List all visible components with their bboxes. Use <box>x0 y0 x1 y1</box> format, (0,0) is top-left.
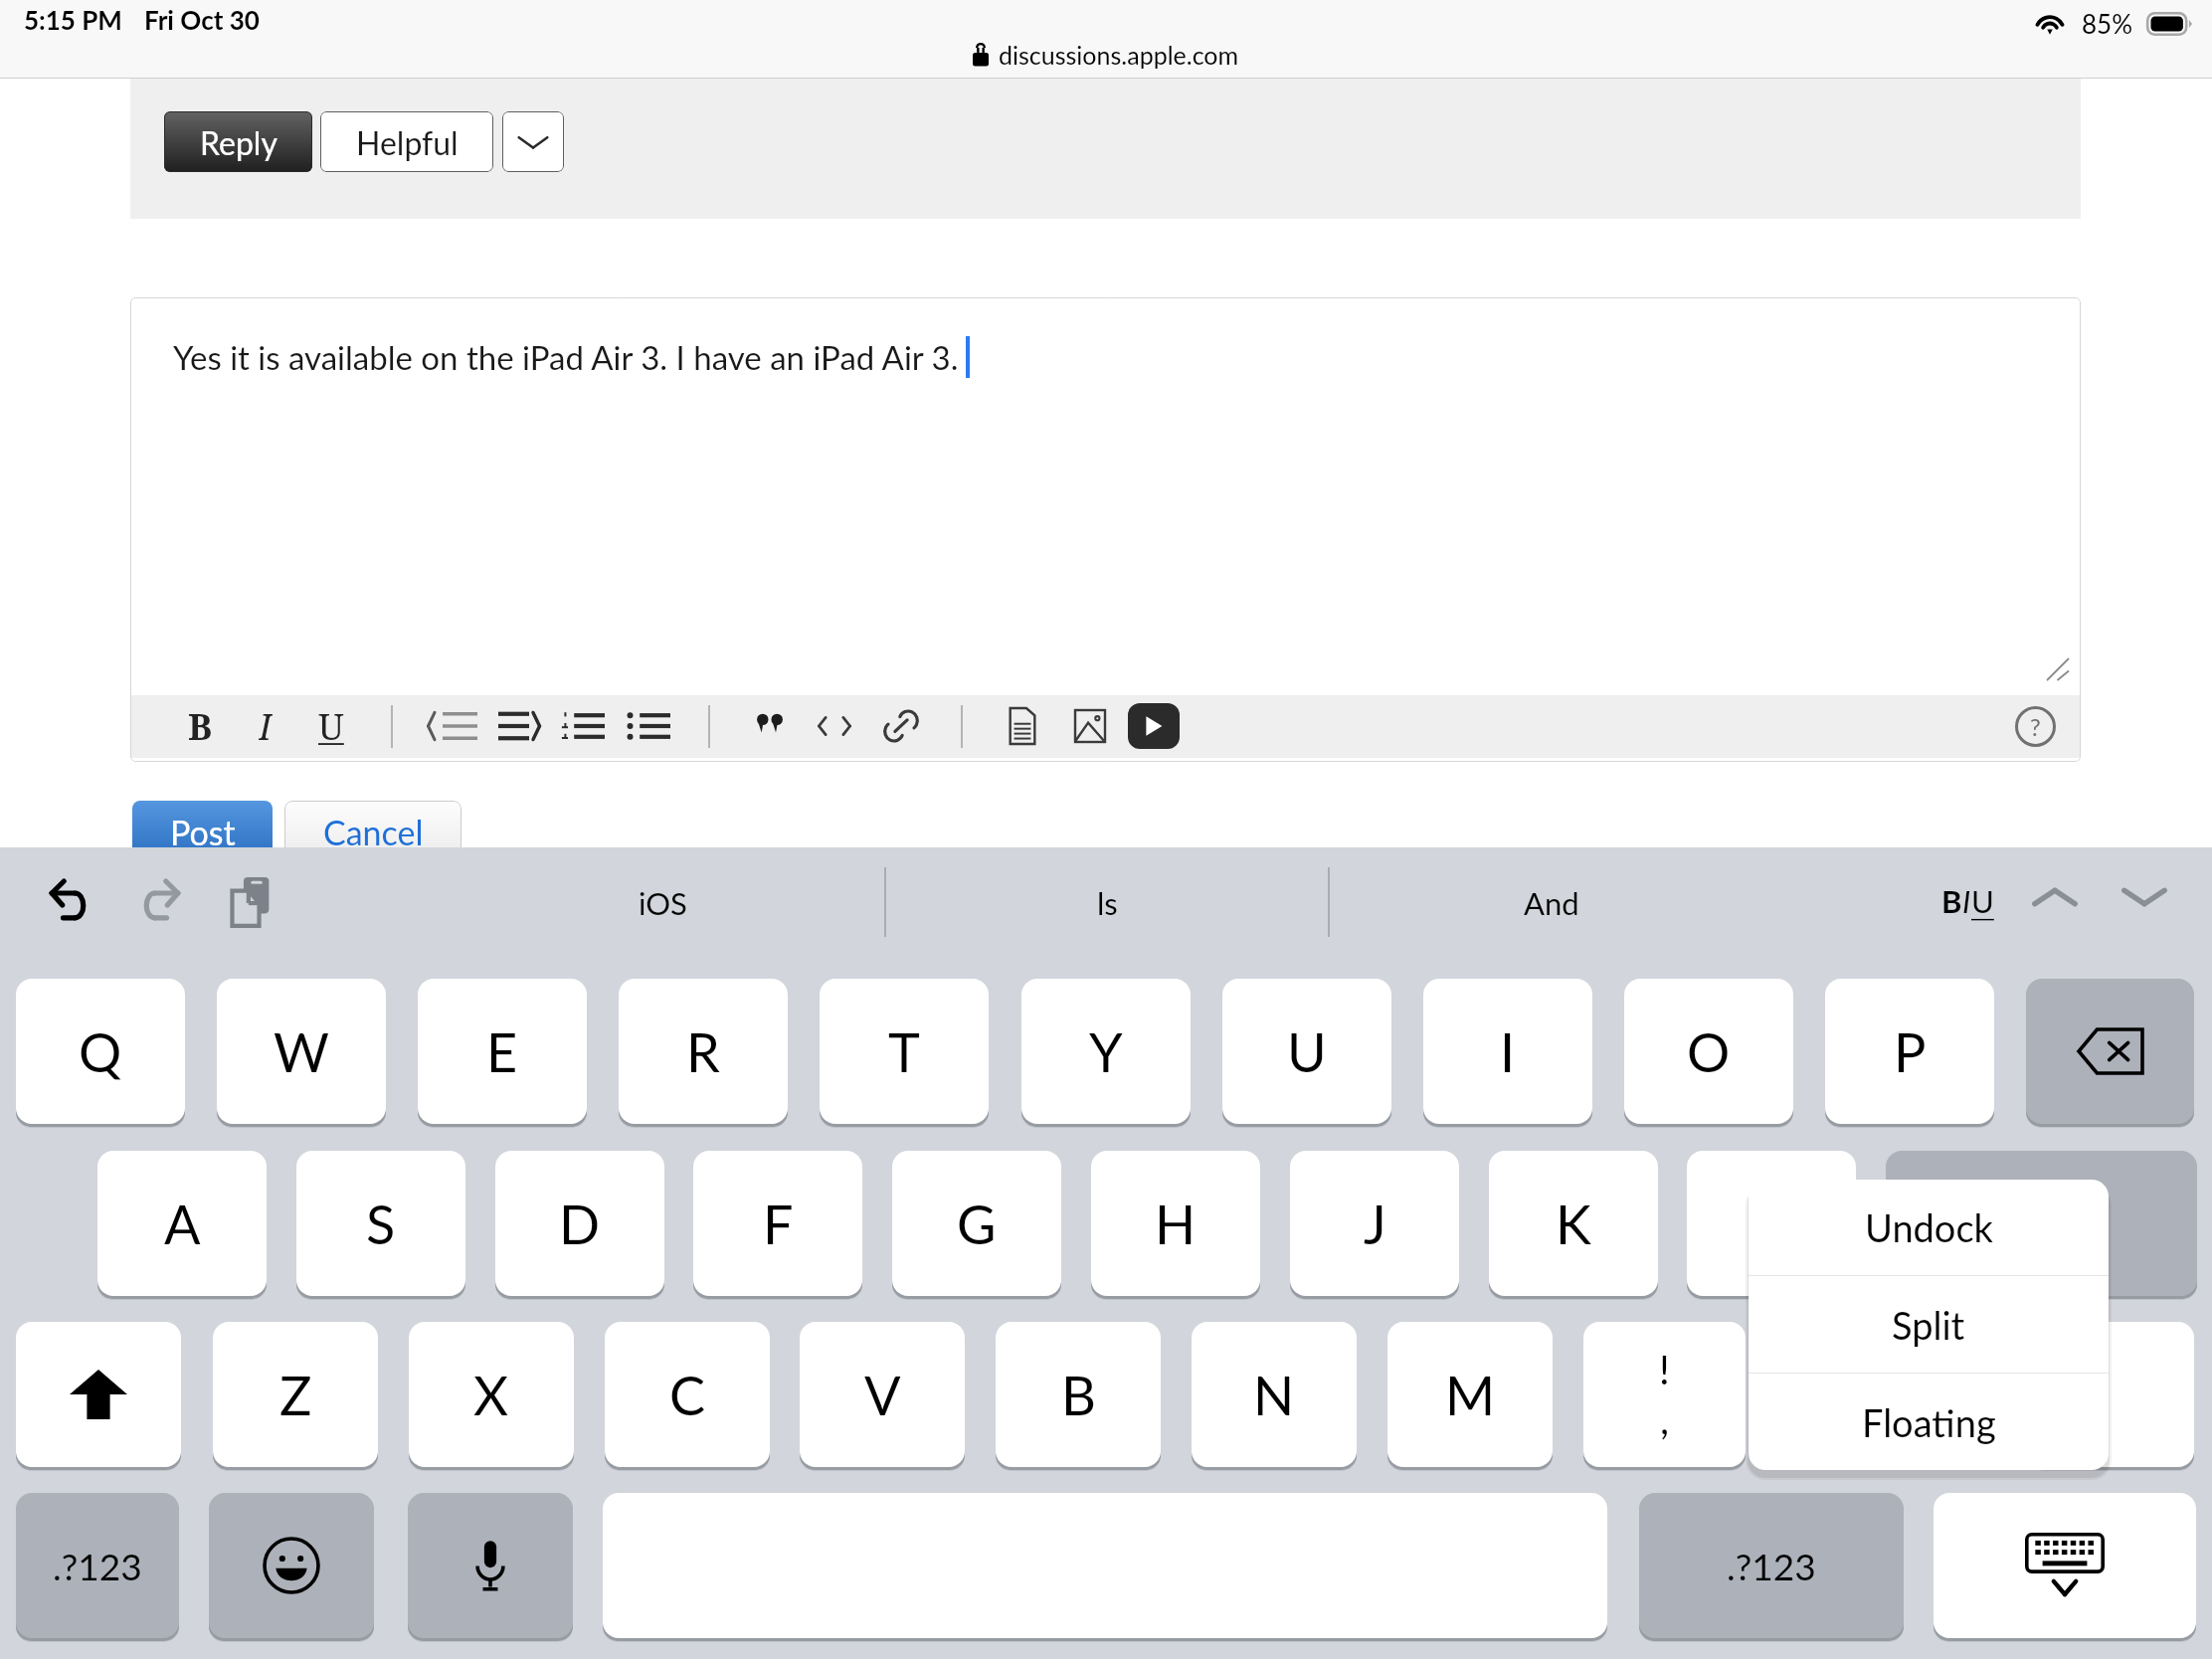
staticText: 5:15 PM <box>24 4 122 35</box>
other: Emoji <box>263 1537 320 1594</box>
button[interactable]: Previous field <box>2030 877 2080 917</box>
staticText: discussions.apple.com <box>999 40 1239 70</box>
button[interactable]: Y <box>1021 979 1191 1124</box>
button[interactable]: M <box>1387 1322 1553 1467</box>
button[interactable]: Delete <box>2026 979 2194 1124</box>
button[interactable]: Split <box>1749 1276 2109 1373</box>
button[interactable]: C <box>605 1322 770 1467</box>
staticText: C <box>669 1363 706 1427</box>
button[interactable]: Cancel <box>284 801 461 862</box>
button[interactable] <box>2029 1322 2194 1467</box>
button[interactable]: return <box>1886 1151 2197 1296</box>
button[interactable]: Next field <box>2120 877 2169 917</box>
staticText: B <box>1061 1363 1096 1427</box>
button[interactable]: B <box>996 1322 1161 1467</box>
button[interactable]: Numbered list <box>561 711 605 741</box>
staticText: ! <box>1659 1346 1670 1393</box>
button[interactable]: Code <box>818 714 851 738</box>
staticText: I <box>1500 1019 1516 1084</box>
button[interactable]: Paste <box>230 876 271 928</box>
button[interactable]: iOS <box>441 857 884 947</box>
button[interactable]: Link <box>884 709 918 743</box>
button[interactable]: I <box>1423 979 1592 1124</box>
button[interactable]: .?123 <box>16 1493 179 1638</box>
staticText: S <box>366 1192 396 1256</box>
button[interactable]: V <box>800 1322 965 1467</box>
button[interactable]: Text format <box>1932 877 2003 923</box>
staticText: O <box>1687 1019 1731 1084</box>
button[interactable]: Undock <box>1749 1180 2109 1275</box>
button[interactable]: ls <box>886 857 1328 947</box>
button[interactable]: Italic <box>249 702 282 750</box>
staticText: K <box>1556 1192 1591 1256</box>
button[interactable]: Shift <box>16 1322 181 1467</box>
staticText: And <box>1524 884 1579 921</box>
staticText: X <box>473 1363 509 1427</box>
other: Hide keyboard <box>2025 1533 2105 1598</box>
staticText: , <box>1660 1395 1670 1443</box>
button[interactable]: N <box>1192 1322 1357 1467</box>
button[interactable]: Z <box>213 1322 378 1467</box>
staticText: Fri Oct 30 <box>144 4 260 35</box>
staticText: E <box>486 1019 518 1084</box>
button[interactable]: Underline <box>310 702 352 750</box>
staticText: F <box>763 1192 794 1256</box>
button[interactable]: P <box>1825 979 1994 1124</box>
button[interactable]: Quote <box>755 711 785 741</box>
button[interactable]: Indent <box>490 709 540 743</box>
button[interactable]: And <box>1330 857 1773 947</box>
staticText: B <box>188 702 213 750</box>
button[interactable]: Helpful <box>320 111 493 172</box>
button[interactable]: Bulleted list <box>627 711 670 741</box>
button[interactable]: T <box>820 979 989 1124</box>
staticText: Z <box>279 1363 312 1427</box>
staticText: Undock <box>1865 1204 1993 1250</box>
button[interactable]: O <box>1624 979 1793 1124</box>
button[interactable]: H <box>1091 1151 1260 1296</box>
button[interactable]: Emoji <box>209 1493 374 1638</box>
button[interactable]: A <box>97 1151 267 1296</box>
staticText: Floating <box>1862 1399 1996 1445</box>
button[interactable]: D <box>495 1151 664 1296</box>
button[interactable]: .?123 <box>1639 1493 1904 1638</box>
button[interactable]: X <box>409 1322 574 1467</box>
button[interactable]: Floating <box>1749 1374 2109 1470</box>
staticText: H <box>1155 1192 1197 1256</box>
staticText: M <box>1445 1363 1496 1427</box>
button[interactable]: More actions <box>502 111 564 172</box>
button[interactable]: L <box>1687 1151 1856 1296</box>
staticText: .?123 <box>53 1544 142 1587</box>
button[interactable]: G <box>892 1151 1061 1296</box>
button[interactable]: U <box>1222 979 1391 1124</box>
other: Delete <box>2077 1027 2144 1075</box>
button[interactable]: Hide keyboard <box>1934 1493 2196 1638</box>
staticText: iOS <box>639 884 687 921</box>
button[interactable]: Post <box>132 801 273 862</box>
button[interactable]: Outdent <box>428 709 477 743</box>
button[interactable]: Insert video <box>1128 703 1180 749</box>
button[interactable]: ! <box>1583 1322 1746 1467</box>
staticText: ? <box>2030 712 2041 741</box>
staticText: W <box>274 1019 329 1084</box>
button[interactable]: Q <box>16 979 185 1124</box>
button[interactable]: Attach file <box>1009 707 1036 745</box>
button[interactable]: Dictation <box>408 1493 573 1638</box>
button[interactable]: S <box>296 1151 465 1296</box>
button[interactable]: Reply <box>164 111 312 172</box>
button[interactable]: J <box>1290 1151 1459 1296</box>
staticText: U <box>318 702 344 750</box>
button[interactable]: Insert image <box>1074 709 1106 743</box>
button[interactable]: Redo <box>140 881 179 921</box>
button[interactable]: R <box>619 979 788 1124</box>
button[interactable]: Bold <box>179 702 221 750</box>
other: Wi-Fi <box>2034 12 2066 36</box>
button[interactable]: Help <box>2015 706 2056 747</box>
button[interactable]: K <box>1489 1151 1658 1296</box>
button[interactable]: E <box>418 979 587 1124</box>
button[interactable]: Undo <box>51 881 90 921</box>
button[interactable]: W <box>217 979 386 1124</box>
button[interactable]: F <box>693 1151 862 1296</box>
